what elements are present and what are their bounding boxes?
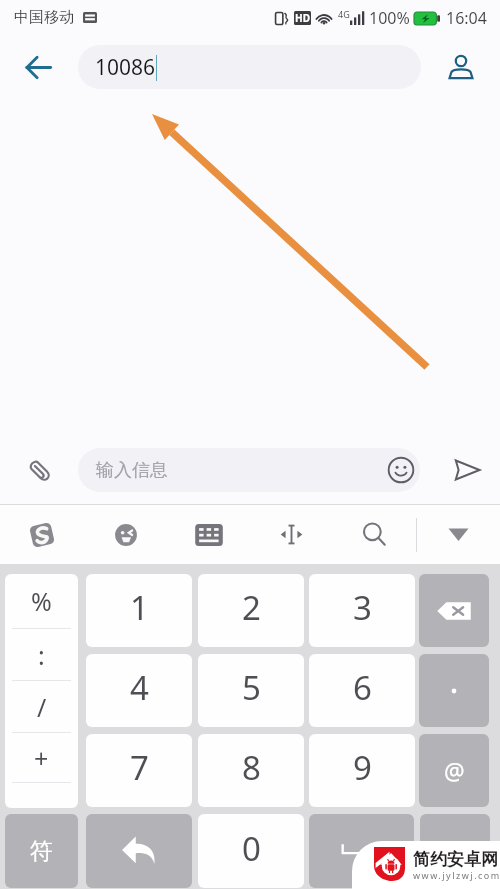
staticText: % <box>31 584 52 618</box>
button[interactable]: 1 <box>86 574 192 647</box>
button[interactable]: Search <box>333 505 416 564</box>
button[interactable]: 8 <box>198 734 304 807</box>
staticText: 4G <box>338 8 350 20</box>
button[interactable]: Symbols <box>420 814 490 888</box>
staticText: 2 <box>242 585 261 630</box>
staticText: 7 <box>130 745 149 790</box>
staticText: 3 <box>353 585 372 630</box>
button[interactable]: 10086 <box>78 45 421 89</box>
button[interactable]: + <box>5 733 78 782</box>
button[interactable]: / <box>5 681 78 732</box>
staticText: 4 <box>130 665 149 710</box>
button[interactable]: : <box>5 629 78 680</box>
staticText: 6 <box>353 665 372 710</box>
button[interactable]: Attach <box>17 448 61 492</box>
button[interactable]: % <box>5 574 78 628</box>
button[interactable] <box>5 783 78 808</box>
button[interactable]: Emoji <box>382 451 420 489</box>
button[interactable]: 9 <box>309 734 415 807</box>
staticText: / <box>37 690 47 724</box>
button[interactable]: Enter <box>86 814 192 888</box>
staticText: 5 <box>242 665 261 710</box>
button[interactable]: Period <box>419 654 489 727</box>
button[interactable]: 2 <box>198 574 304 647</box>
button[interactable]: 7 <box>86 734 192 807</box>
button[interactable]: Sogou input <box>0 505 84 564</box>
staticText: : <box>38 638 45 672</box>
button[interactable]: 4 <box>86 654 192 727</box>
button[interactable]: Keyboard <box>167 505 250 564</box>
staticText: + <box>34 741 49 775</box>
button[interactable]: 0 <box>198 814 304 888</box>
button[interactable]: Emoji <box>84 505 167 564</box>
button[interactable]: 符 <box>5 814 78 888</box>
staticText: 9 <box>353 745 372 790</box>
button[interactable]: Contacts <box>440 46 482 88</box>
staticText: 1 <box>130 585 149 630</box>
button[interactable]: Back <box>15 44 61 90</box>
staticText: 100% <box>369 7 410 29</box>
button[interactable]: 输入信息 <box>78 448 420 492</box>
button[interactable]: @ <box>419 734 489 807</box>
staticText: 10086 <box>95 53 156 82</box>
staticText: www.jylzwj.com <box>413 869 500 881</box>
staticText: 中国移动 <box>14 8 74 27</box>
staticText: HD <box>295 11 310 25</box>
button[interactable]: Hide keyboard <box>417 505 500 564</box>
staticText: @ <box>444 755 465 786</box>
button[interactable]: Backspace <box>419 574 489 647</box>
button[interactable]: Space <box>309 814 414 888</box>
staticText: 简约安卓网 <box>413 849 498 870</box>
button[interactable]: Send <box>445 448 489 492</box>
button[interactable]: 3 <box>309 574 415 647</box>
staticText: 输入信息 <box>96 459 168 482</box>
button[interactable]: 5 <box>198 654 304 727</box>
staticText: 0 <box>242 826 261 871</box>
staticText: 符 <box>30 837 53 866</box>
button[interactable]: 6 <box>309 654 415 727</box>
button[interactable]: Move cursor <box>250 505 333 564</box>
staticText: 16:04 <box>446 7 487 29</box>
staticText: 8 <box>242 745 261 790</box>
